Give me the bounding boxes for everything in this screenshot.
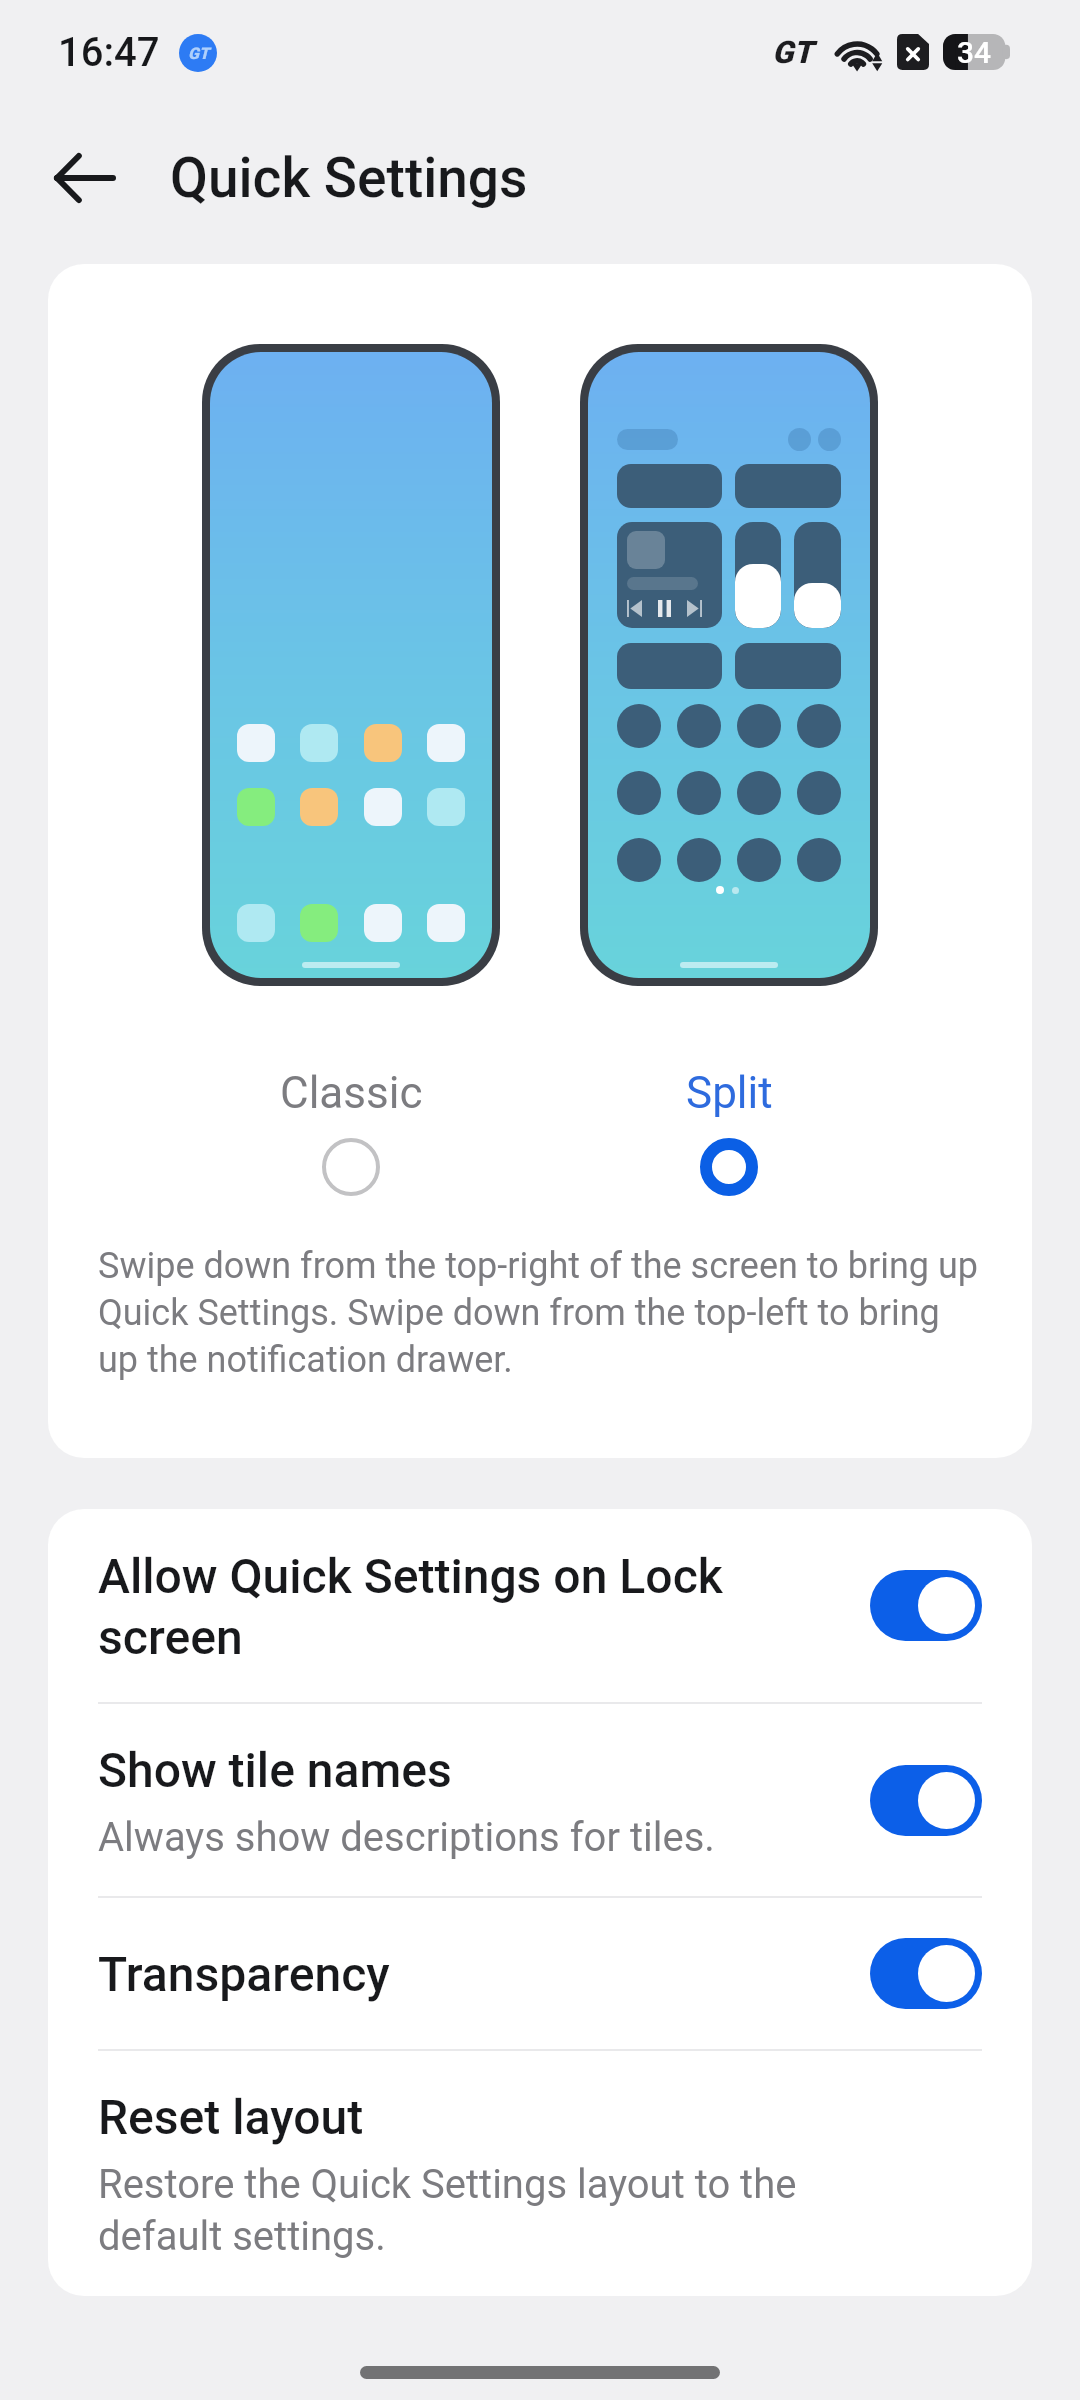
button[interactable]: Show tile names [48, 1704, 1032, 1896]
staticText: Allow Quick Settings on Lock screen [98, 1545, 723, 1667]
button[interactable]: Classic [202, 1067, 500, 1198]
staticText: Classic [280, 1067, 423, 1119]
staticText: Restore the Quick Settings layout to the… [98, 2157, 797, 2261]
button[interactable]: Allow Quick Settings on Lock screen [48, 1509, 1032, 1702]
staticText: 16:47 [58, 29, 160, 76]
staticText: Always show descriptions for tiles. [98, 1810, 715, 1862]
staticText: 34 [957, 35, 992, 70]
staticText: GT [772, 34, 813, 70]
button[interactable]: Split [580, 1067, 878, 1198]
staticText: Split [686, 1067, 773, 1119]
button[interactable]: Transparency [48, 1898, 1032, 2049]
staticText: Reset layout [98, 2086, 364, 2147]
staticText: Quick Settings [170, 146, 528, 210]
button[interactable]: Reset layout [48, 2051, 1032, 2296]
button[interactable]: Back [22, 115, 148, 241]
staticText: Swipe down from the top-right of the scr… [98, 1241, 978, 1382]
staticText: GT [188, 44, 209, 63]
staticText: Show tile names [98, 1739, 452, 1800]
staticText: Transparency [98, 1943, 390, 2004]
